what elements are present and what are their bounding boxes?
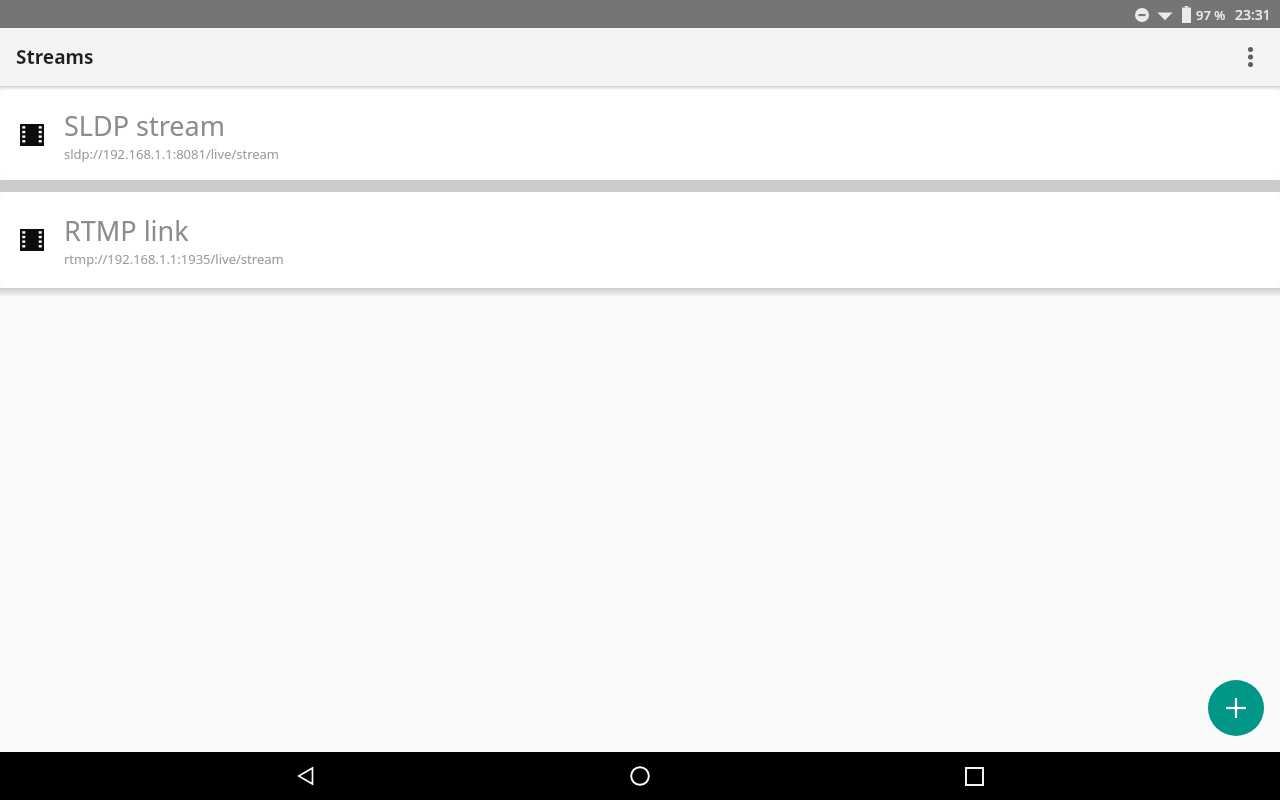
button[interactable]: SLDP stream [0,90,1280,180]
button[interactable]: RTMP link [0,192,1280,288]
staticText: SLDP stream [64,107,225,144]
staticText: RTMP link [64,212,189,249]
button[interactable]: Recent apps [946,752,1002,800]
staticText: 97 % [1196,6,1226,24]
staticText: Streams [16,44,94,70]
staticText: 23:31 [1235,5,1271,24]
button[interactable]: Add stream [1208,680,1264,736]
button[interactable]: More options [1226,33,1274,81]
staticText: sldp://192.168.1.1:8081/live/stream [64,145,280,163]
button[interactable]: Back [278,752,334,800]
staticText: rtmp://192.168.1.1:1935/live/stream [64,250,284,268]
button[interactable]: Home [612,752,668,800]
